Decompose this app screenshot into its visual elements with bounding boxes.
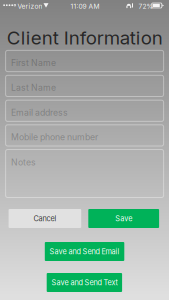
- staticText: Save: [115, 214, 132, 223]
- staticText: 11:09 AM: [71, 2, 100, 10]
- button[interactable]: Cancel: [9, 209, 81, 228]
- button[interactable]: Save and Send Email: [45, 242, 124, 261]
- staticText: Save and Send Text: [51, 278, 117, 287]
- staticText: Verizon: [17, 2, 42, 10]
- staticText: Mobile phone number: [11, 132, 98, 142]
- staticText: Client Information: [7, 26, 163, 49]
- button[interactable]: Save: [88, 209, 159, 228]
- button[interactable]: Save and Send Text: [47, 273, 122, 292]
- staticText: Last Name: [11, 82, 56, 93]
- staticText: Email address: [11, 107, 68, 118]
- staticText: Cancel: [33, 214, 56, 223]
- staticText: Notes: [11, 157, 36, 167]
- staticText: Save and Send Email: [49, 247, 119, 256]
- staticText: First Name: [11, 57, 56, 68]
- staticText: 72%: [138, 2, 153, 10]
